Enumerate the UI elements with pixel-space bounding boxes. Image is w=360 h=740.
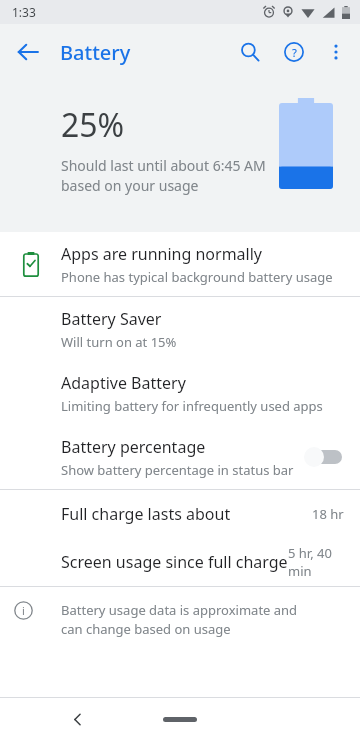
staticText: Battery usage data is approximate and ca… [61,601,321,638]
button[interactable]: Adaptive Battery [0,361,360,425]
button[interactable]: Help [272,30,316,74]
button[interactable]: Screen usage since full charge [0,538,360,586]
button[interactable]: Apps are running normally [0,232,360,296]
staticText: Battery Saver [61,308,162,330]
button[interactable]: Battery Saver [0,297,360,361]
staticText: Will turn on at 15% [61,333,177,351]
staticText: i [22,603,25,618]
button[interactable]: Back [6,30,50,74]
staticText: Battery [60,39,131,66]
staticText: Full charge lasts about [61,503,231,525]
button[interactable]: Home [163,717,197,722]
staticText: 25% [61,103,125,147]
staticText: ? [292,45,297,60]
button[interactable]: More options [316,32,356,72]
staticText: Phone has typical background battery usa… [61,268,333,286]
staticText: Should last until about 6:45 AM based on… [61,156,281,195]
button[interactable]: Back [58,699,98,739]
staticText: Battery percentage [61,436,206,458]
button[interactable]: Search [228,30,272,74]
staticText: 18 hr [312,505,344,523]
staticText: Show battery percentage in status bar [61,461,294,479]
staticText: 5 hr, 40 min [288,544,344,580]
button[interactable]: Full charge lasts about [0,490,360,538]
staticText: Limiting battery for infrequently used a… [61,397,323,415]
staticText: Screen usage since full charge [61,551,288,573]
staticText: 1:33 [12,4,36,20]
staticText: Adaptive Battery [61,372,186,394]
staticText: Apps are running normally [61,243,262,265]
button[interactable]: Battery percentage [0,425,360,489]
